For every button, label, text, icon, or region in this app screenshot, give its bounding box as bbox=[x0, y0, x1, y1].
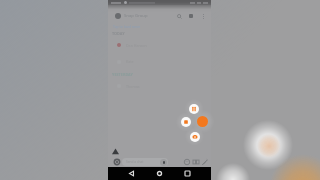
button[interactable]: Dan Hanson bbox=[108, 37, 211, 53]
staticText: YESTERDAY bbox=[112, 72, 133, 77]
staticText: Send a chat bbox=[126, 160, 144, 164]
button[interactable]: Pause bbox=[189, 104, 199, 114]
button[interactable]: Video call bbox=[185, 10, 197, 22]
button[interactable]: Emoji bbox=[182, 157, 191, 166]
button[interactable]: Search bbox=[173, 10, 185, 22]
button[interactable]: Home bbox=[154, 168, 165, 179]
button[interactable]: Send a chat bbox=[122, 158, 168, 166]
staticText: Snap Group bbox=[124, 13, 148, 19]
button[interactable]: Back bbox=[126, 168, 137, 179]
button[interactable]: Scroll to bottom bbox=[112, 148, 119, 155]
button[interactable]: More options bbox=[197, 10, 209, 22]
button[interactable]: Stickers bbox=[191, 157, 200, 166]
button[interactable]: Tap to load more bbox=[113, 24, 141, 29]
button[interactable]: Record bbox=[197, 116, 208, 127]
staticText: TODAY bbox=[112, 31, 125, 36]
button[interactable]: Profile bbox=[115, 13, 121, 19]
button[interactable]: Camera bbox=[190, 132, 200, 142]
button[interactable]: Stop bbox=[181, 117, 191, 127]
button[interactable]: Camera bbox=[113, 158, 120, 165]
button[interactable]: Send bbox=[200, 157, 209, 166]
button[interactable]: Recents bbox=[182, 168, 193, 179]
